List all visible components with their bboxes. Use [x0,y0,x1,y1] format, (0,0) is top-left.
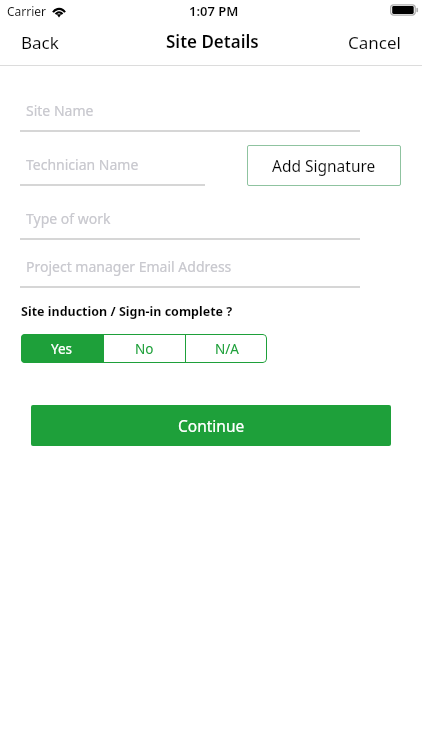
staticText: Technician Name [26,155,139,174]
staticText: 1:07 PM [189,2,239,20]
staticText: No [135,340,154,358]
staticText: Site induction / Sign-in complete ? [21,303,233,320]
button[interactable]: Yes [21,334,103,363]
staticText: Carrier [7,3,47,19]
staticText: Add Signature [272,155,376,176]
staticText: N/A [215,340,239,358]
staticText: Site Name [26,101,94,120]
staticText: Site Details [166,30,259,53]
staticText: Back [21,31,59,54]
button[interactable]: No [104,334,185,363]
button[interactable]: Add Signature [247,145,401,186]
staticText: Type of work [26,209,111,228]
button[interactable]: N/A [186,334,267,363]
staticText: Cancel [348,31,401,54]
staticText: Project manager Email Address [26,257,232,276]
staticText: Continue [178,415,245,436]
button[interactable]: Cancel [334,25,415,60]
button[interactable]: Continue [31,405,391,446]
staticText: Yes [51,340,73,358]
button[interactable]: Back [7,25,73,60]
